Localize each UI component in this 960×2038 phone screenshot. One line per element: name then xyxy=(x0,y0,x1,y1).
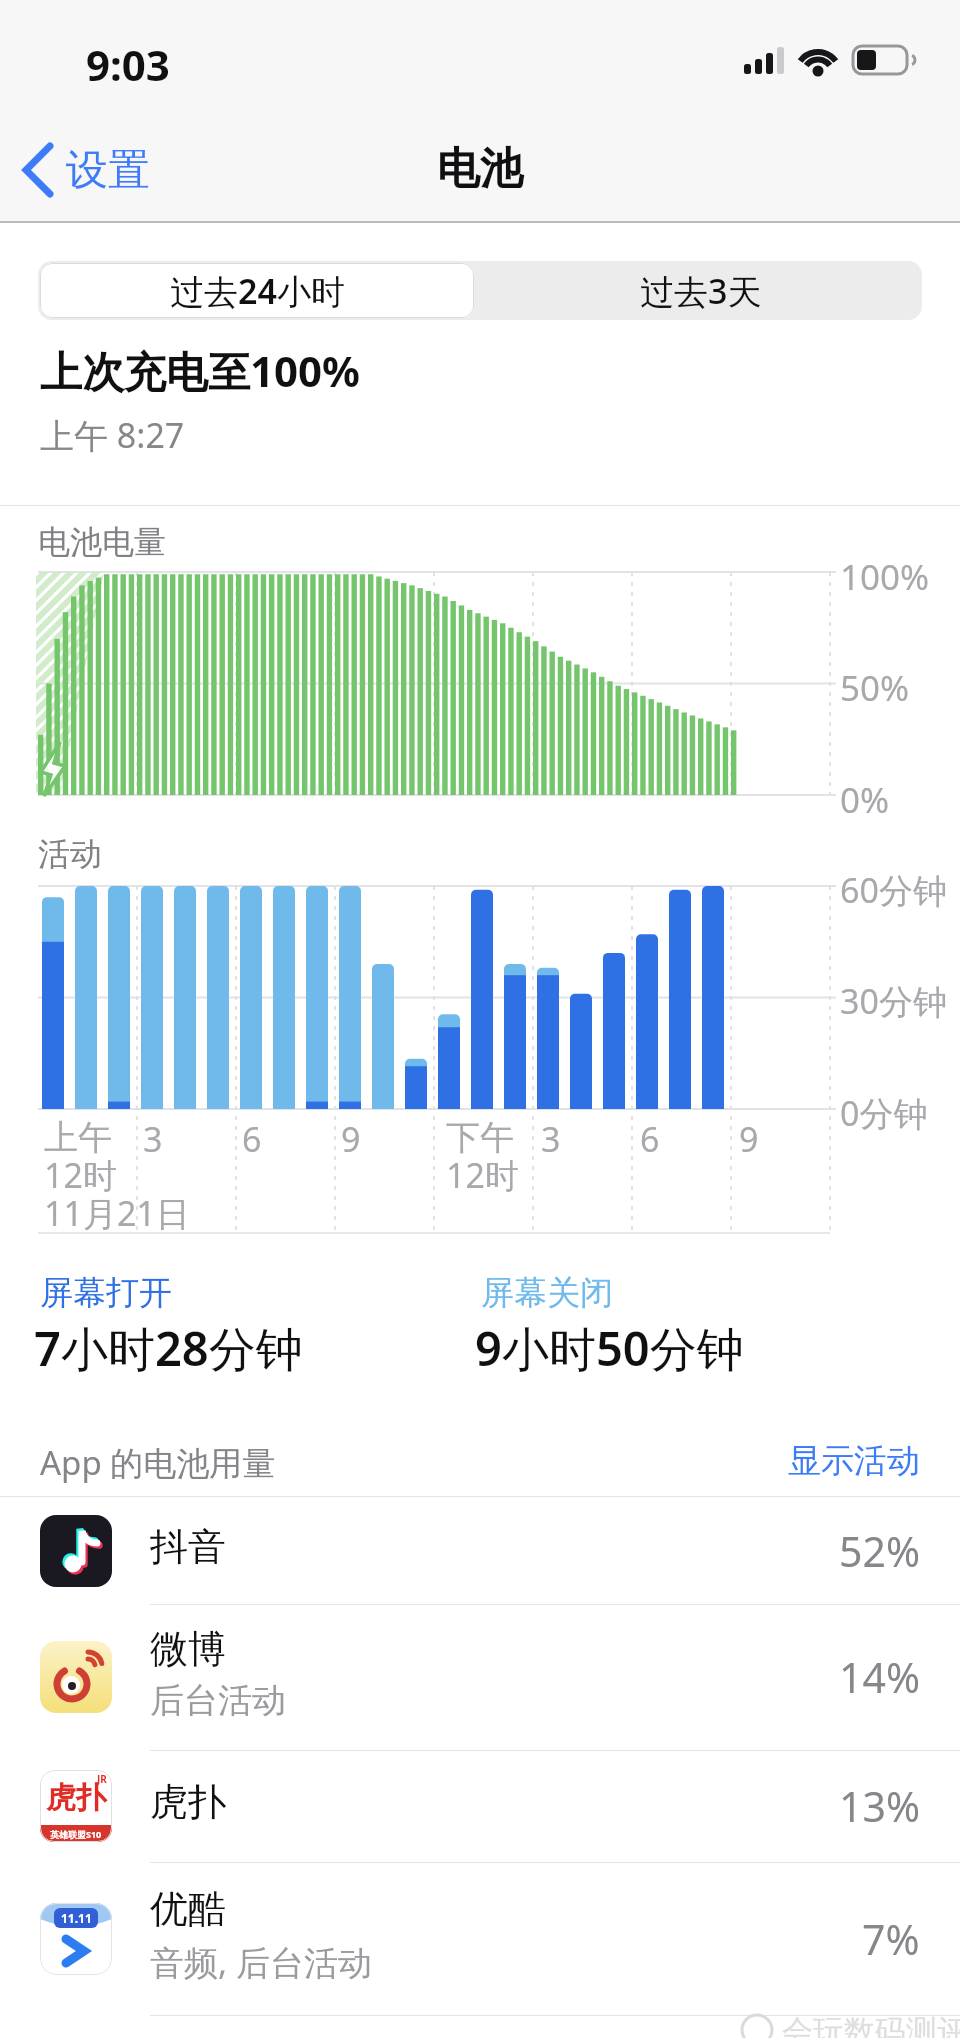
staticText: JR xyxy=(97,1772,107,1786)
staticText: 音频, 后台活动 xyxy=(150,1939,372,1985)
staticText: 屏幕关闭 xyxy=(481,1272,613,1314)
staticText: 电池 xyxy=(437,142,523,196)
staticText: 30分钟 xyxy=(840,978,947,1024)
button[interactable]: 虎扑 xyxy=(0,1750,960,1862)
staticText: 13% xyxy=(839,1778,920,1834)
button[interactable]: 抖音 xyxy=(0,1497,960,1604)
staticText: 12时 xyxy=(44,1152,117,1198)
staticText: 9小时50分钟 xyxy=(475,1316,744,1380)
staticText: 6 xyxy=(242,1116,262,1162)
staticText: App 的电池用量 xyxy=(40,1440,276,1485)
button[interactable]: 11.11 xyxy=(0,1862,960,2015)
staticText: 3 xyxy=(541,1116,561,1162)
staticText: 12时 xyxy=(446,1152,519,1198)
button[interactable]: 显示活动 xyxy=(700,1440,920,1482)
staticText: 电池电量 xyxy=(38,522,166,562)
staticText: 11月21日 xyxy=(44,1190,190,1236)
staticText: 虎扑 xyxy=(150,1778,226,1826)
staticText: 优酷 xyxy=(150,1885,226,1933)
staticText: 英雄联盟S10 xyxy=(50,1828,102,1840)
staticText: 6 xyxy=(640,1116,660,1162)
staticText: 7% xyxy=(862,1911,920,1967)
staticText: 7小时28分钟 xyxy=(34,1316,303,1380)
staticText: 上午 8:27 xyxy=(40,412,185,458)
staticText: 100% xyxy=(840,553,930,601)
staticText: 后台活动 xyxy=(150,1679,286,1722)
staticText: 9:03 xyxy=(86,36,170,93)
button[interactable]: 过去24小时 xyxy=(40,263,474,318)
staticText: 11.11 xyxy=(61,1910,92,1926)
staticText: 52% xyxy=(839,1523,920,1579)
staticText: 3 xyxy=(143,1116,163,1162)
staticText: 下午 xyxy=(446,1116,514,1159)
staticText: 上次充电至100% xyxy=(40,342,360,399)
staticText: 60分钟 xyxy=(840,867,947,913)
staticText: 活动 xyxy=(38,834,102,874)
staticText: 0% xyxy=(840,776,890,824)
staticText: 抖音 xyxy=(150,1523,226,1571)
staticText: 过去3天 xyxy=(640,268,762,314)
staticText: 14% xyxy=(839,1649,920,1705)
staticText: 微博 xyxy=(150,1625,226,1673)
staticText: 过去24小时 xyxy=(170,268,345,314)
staticText: 设置 xyxy=(66,144,150,197)
staticText: 虎扑 xyxy=(46,1779,106,1817)
staticText: 上午 xyxy=(44,1116,112,1159)
button[interactable]: 微博 xyxy=(0,1604,960,1750)
staticText: 屏幕打开 xyxy=(40,1272,172,1314)
staticText: 50% xyxy=(840,664,910,712)
staticText: 显示活动 xyxy=(788,1440,920,1482)
staticText: 会玩数码测评 xyxy=(782,2012,960,2038)
staticText: 0分钟 xyxy=(840,1090,928,1136)
staticText: 9 xyxy=(341,1116,361,1162)
button[interactable]: 过去3天 xyxy=(480,261,922,320)
staticText: 9 xyxy=(739,1116,759,1162)
button[interactable]: 设置 xyxy=(16,132,216,208)
